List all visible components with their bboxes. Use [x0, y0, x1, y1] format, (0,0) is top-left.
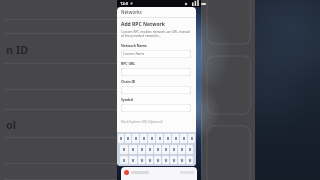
- button[interactable]: Key: [125, 134, 131, 143]
- button[interactable]: Key: [148, 134, 155, 143]
- button[interactable]: Key: [154, 156, 161, 164]
- staticText: RPC URL: [121, 61, 136, 66]
- button[interactable]: ol: [4, 110, 320, 138]
- staticText: n ID: [6, 42, 29, 57]
- button[interactable]: Key: [138, 145, 145, 154]
- button[interactable]: [121, 86, 191, 94]
- other: Recording: [124, 170, 129, 175]
- button[interactable]: [4, 64, 320, 90]
- button[interactable]: [121, 68, 191, 76]
- staticText: Add RPC Network: [121, 21, 165, 28]
- button[interactable]: Recording: [121, 167, 197, 180]
- button[interactable]: Key: [170, 156, 177, 164]
- button[interactable]: [4, 90, 320, 110]
- staticText: Custom Name: [123, 52, 145, 56]
- button[interactable]: Key: [180, 134, 187, 143]
- button[interactable]: Key: [162, 156, 169, 164]
- button[interactable]: Custom Name: [121, 50, 191, 58]
- button[interactable]: Key: [188, 134, 195, 143]
- button[interactable]: Key: [146, 145, 153, 154]
- button[interactable]: [4, 20, 320, 34]
- button[interactable]: n ID: [4, 34, 320, 64]
- button[interactable]: Key: [186, 156, 193, 164]
- button[interactable]: Key: [186, 145, 193, 154]
- button[interactable]: Key: [140, 134, 147, 143]
- button[interactable]: Networks: [117, 7, 196, 17]
- button[interactable]: Key: [132, 134, 139, 143]
- button[interactable]: Key: [162, 145, 169, 154]
- button[interactable]: Key: [156, 134, 163, 143]
- button[interactable]: Key: [164, 134, 171, 143]
- staticText: Network Name: [121, 43, 147, 48]
- button[interactable]: Key: [120, 145, 128, 154]
- button[interactable]: [121, 104, 191, 112]
- button[interactable]: [4, 164, 320, 180]
- button[interactable]: Key: [129, 156, 137, 164]
- staticText: 12:0: [120, 1, 128, 6]
- button[interactable]: Key: [178, 145, 185, 154]
- staticText: ol: [6, 117, 17, 132]
- button[interactable]: [4, 138, 320, 164]
- button[interactable]: Key: [118, 134, 124, 143]
- staticText: Block Explorer URL (Optional): [121, 120, 163, 124]
- staticText: Custom RPC enables network use URL inste…: [121, 30, 190, 38]
- button[interactable]: Key: [120, 156, 128, 164]
- button[interactable]: [4, 4, 320, 20]
- button[interactable]: Key: [146, 156, 153, 164]
- button[interactable]: Key: [129, 145, 137, 154]
- button[interactable]: Key: [172, 134, 179, 143]
- staticText: Chain ID: [121, 79, 136, 84]
- staticText: Networks: [121, 9, 142, 15]
- button[interactable]: Key: [154, 145, 161, 154]
- staticText: Symbol: [121, 97, 134, 102]
- button[interactable]: Key: [138, 156, 145, 164]
- button[interactable]: Key: [170, 145, 177, 154]
- button[interactable]: Key: [178, 156, 185, 164]
